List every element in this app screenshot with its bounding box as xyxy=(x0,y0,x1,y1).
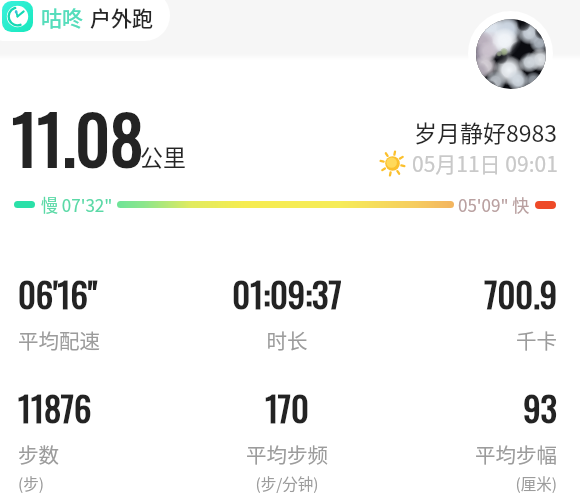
button[interactable]: 11876 xyxy=(18,382,197,494)
button[interactable]: 170 xyxy=(197,382,377,494)
staticText: 93 xyxy=(377,382,557,433)
staticText: 06'16" xyxy=(18,268,197,319)
staticText: 05'09" 快 xyxy=(458,192,530,217)
button[interactable]: 93 xyxy=(377,382,557,494)
staticText: (厘米) xyxy=(377,472,557,494)
staticText: 公里 xyxy=(140,139,186,172)
staticText: 01:09:37 xyxy=(197,268,377,319)
button[interactable]: 06'16" xyxy=(18,268,197,355)
button[interactable]: 700.9 xyxy=(377,268,557,355)
staticText: 170 xyxy=(197,382,377,433)
staticText: 11876 xyxy=(18,382,197,433)
staticText: 11.08 xyxy=(12,87,144,186)
button[interactable]: 咕咚 xyxy=(0,0,170,41)
staticText: 岁月静好8983 xyxy=(300,115,557,148)
staticText: 户外跑 xyxy=(90,2,153,32)
staticText: 05月11日 09:01 xyxy=(412,148,558,178)
staticText: 平均步频 xyxy=(197,439,377,469)
button[interactable]: 01:09:37 xyxy=(197,268,377,355)
staticText: 平均配速 xyxy=(18,325,197,355)
staticText: 步数 xyxy=(18,439,197,469)
staticText: 咕咚 xyxy=(41,2,83,32)
button[interactable]: Profile avatar xyxy=(468,11,553,96)
staticText: 时长 xyxy=(197,325,377,355)
staticText: (步) xyxy=(18,472,197,494)
staticText: (步/分钟) xyxy=(197,472,377,494)
staticText: 慢 07'32" xyxy=(41,192,113,217)
staticText: 平均步幅 xyxy=(377,439,557,469)
staticText: 千卡 xyxy=(377,325,557,355)
staticText: 700.9 xyxy=(377,268,557,319)
